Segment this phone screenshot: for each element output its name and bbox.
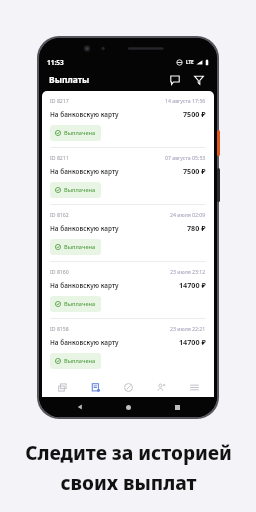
- staticText: ID 8162: [50, 211, 69, 218]
- button[interactable]: Recents: [169, 399, 185, 415]
- button[interactable]: Выплачена: [50, 182, 101, 198]
- button[interactable]: Filter: [190, 71, 208, 89]
- staticText: 23 июля 22:21: [170, 325, 206, 332]
- staticText: своих выплат: [60, 470, 197, 496]
- button[interactable]: Home: [120, 399, 136, 415]
- staticText: Выплаты: [49, 74, 90, 86]
- button[interactable]: ID 8158: [42, 318, 214, 375]
- staticText: 7500 ₽: [183, 166, 206, 176]
- staticText: Выплачена: [64, 186, 96, 194]
- button[interactable]: Messages: [166, 71, 184, 89]
- staticText: 11:53: [47, 58, 64, 67]
- staticText: 14 августа 17:56: [165, 97, 206, 104]
- button[interactable]: ID 8162: [42, 204, 214, 261]
- staticText: 23 июля 23:12: [170, 268, 206, 275]
- staticText: ID 8211: [50, 154, 69, 161]
- button[interactable]: Explore: [115, 377, 141, 397]
- staticText: 24 июля 02:09: [170, 211, 206, 218]
- staticText: На банковскую карту: [50, 338, 119, 347]
- button[interactable]: Выплачена: [50, 125, 101, 141]
- staticText: Выплачена: [64, 300, 96, 308]
- button[interactable]: Cards: [49, 377, 75, 397]
- button[interactable]: Back: [72, 399, 88, 415]
- button[interactable]: Payouts: [82, 377, 108, 397]
- staticText: ID 8217: [50, 97, 69, 104]
- staticText: На банковскую карту: [50, 224, 119, 233]
- staticText: ID 8160: [50, 268, 69, 275]
- button[interactable]: ID 8160: [42, 261, 214, 318]
- staticText: Следите за историей: [25, 440, 232, 466]
- button[interactable]: Menu: [181, 377, 207, 397]
- button[interactable]: Выплачена: [50, 239, 101, 255]
- staticText: LTE: [186, 59, 194, 65]
- staticText: Выплачена: [64, 357, 96, 365]
- button[interactable]: Выплачена: [50, 296, 101, 312]
- staticText: 07 августа 05:53: [165, 154, 206, 161]
- staticText: Выплачена: [64, 129, 96, 137]
- staticText: 14700 ₽: [179, 337, 206, 347]
- button[interactable]: ID 8217: [42, 91, 214, 147]
- button[interactable]: ID 8211: [42, 147, 214, 204]
- staticText: 780 ₽: [187, 223, 206, 233]
- staticText: На банковскую карту: [50, 110, 119, 119]
- staticText: ID 8158: [50, 325, 69, 332]
- staticText: На банковскую карту: [50, 281, 119, 290]
- staticText: На банковскую карту: [50, 167, 119, 176]
- button[interactable]: Invite: [148, 377, 174, 397]
- staticText: 7500 ₽: [183, 109, 206, 119]
- button[interactable]: Выплачена: [50, 353, 101, 369]
- staticText: Выплачена: [64, 243, 96, 251]
- staticText: 14700 ₽: [179, 280, 206, 290]
